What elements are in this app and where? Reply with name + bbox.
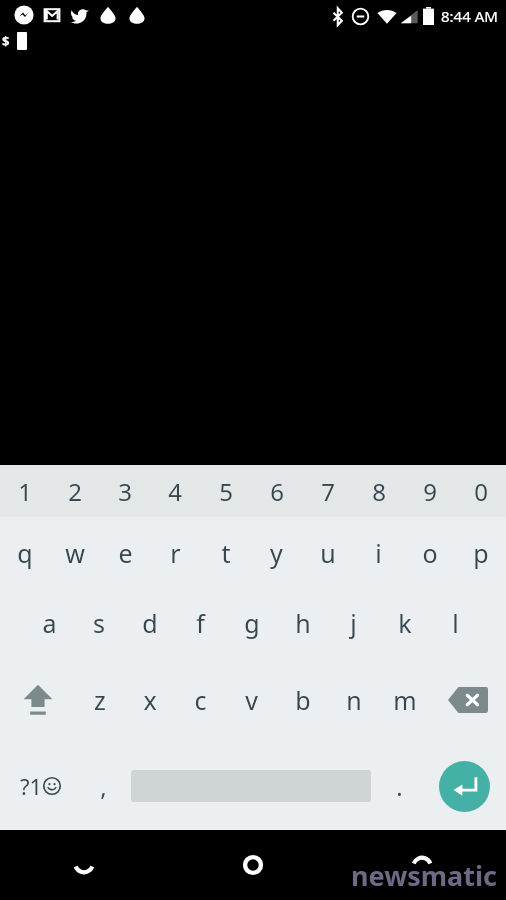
staticText: e <box>118 536 133 570</box>
staticText: 5 <box>219 475 233 508</box>
button[interactable]: Home <box>168 830 337 900</box>
button[interactable]: . <box>376 742 422 830</box>
button[interactable]: n <box>328 657 379 742</box>
button[interactable]: t <box>200 517 251 589</box>
button[interactable]: c <box>175 657 226 742</box>
staticText: w <box>65 536 85 570</box>
button[interactable]: Enter <box>422 742 506 830</box>
staticText: s <box>93 606 105 640</box>
staticText: $ <box>2 32 10 50</box>
staticText: o <box>422 536 438 570</box>
button[interactable]: u <box>302 517 353 589</box>
staticText: ?1 <box>20 771 43 801</box>
button[interactable]: 7 <box>302 465 353 517</box>
button[interactable]: 0 <box>455 465 506 517</box>
button[interactable]: , <box>80 742 126 830</box>
button[interactable]: o <box>404 517 455 589</box>
staticText: 3 <box>118 475 132 508</box>
button[interactable]: w <box>50 517 100 589</box>
button[interactable]: g <box>226 589 277 657</box>
button[interactable]: j <box>328 589 379 657</box>
staticText: r <box>170 536 181 570</box>
staticText: a <box>42 606 57 640</box>
staticText: x <box>143 683 157 717</box>
staticText: z <box>94 683 106 717</box>
button[interactable]: m <box>379 657 430 742</box>
button[interactable]: 3 <box>100 465 150 517</box>
staticText: c <box>194 683 207 717</box>
button[interactable]: Shift <box>0 657 75 742</box>
button[interactable]: i <box>353 517 404 589</box>
button[interactable]: 6 <box>251 465 302 517</box>
staticText: i <box>375 536 382 570</box>
staticText: n <box>346 683 362 717</box>
staticText: q <box>17 536 33 570</box>
staticText: , <box>100 770 107 803</box>
button[interactable]: y <box>251 517 302 589</box>
staticText: g <box>244 606 260 640</box>
button[interactable]: l <box>430 589 481 657</box>
staticText: p <box>473 536 489 570</box>
staticText: 0 <box>474 475 488 508</box>
button[interactable]: e <box>100 517 150 589</box>
staticText: k <box>398 606 412 640</box>
staticText: 7 <box>321 475 335 508</box>
staticText: 9 <box>423 475 437 508</box>
staticText: 2 <box>68 475 82 508</box>
button[interactable]: 4 <box>150 465 200 517</box>
button[interactable]: Recents <box>337 830 506 900</box>
staticText: 1 <box>18 475 32 508</box>
staticText: 6 <box>270 475 284 508</box>
staticText: d <box>142 606 158 640</box>
staticText: y <box>270 536 283 570</box>
button[interactable]: 9 <box>404 465 455 517</box>
button[interactable]: a <box>24 589 74 657</box>
button[interactable]: 8 <box>353 465 404 517</box>
button[interactable]: h <box>277 589 328 657</box>
button[interactable]: f <box>175 589 226 657</box>
button[interactable]: s <box>74 589 124 657</box>
button[interactable]: p <box>455 517 506 589</box>
staticText: v <box>245 683 258 717</box>
button[interactable]: Space <box>126 742 376 830</box>
button[interactable]: Delete <box>430 657 506 742</box>
button[interactable]: x <box>125 657 175 742</box>
staticText: u <box>320 536 336 570</box>
staticText: 8 <box>372 475 386 508</box>
staticText: f <box>196 606 205 640</box>
button[interactable]: 1 <box>0 465 50 517</box>
staticText: m <box>393 683 417 717</box>
staticText: newsmatic <box>351 857 498 894</box>
staticText: j <box>350 606 357 640</box>
button[interactable]: q <box>0 517 50 589</box>
button[interactable]: r <box>150 517 200 589</box>
staticText: b <box>295 683 311 717</box>
button[interactable]: z <box>75 657 125 742</box>
staticText: l <box>452 606 459 640</box>
staticText: h <box>295 606 311 640</box>
button[interactable]: b <box>277 657 328 742</box>
staticText: 8:44 AM <box>441 6 498 26</box>
button[interactable]: 5 <box>200 465 251 517</box>
button[interactable]: ?1 <box>0 742 80 830</box>
button[interactable]: k <box>379 589 430 657</box>
button[interactable]: d <box>124 589 175 657</box>
button[interactable]: 2 <box>50 465 100 517</box>
staticText: . <box>396 770 403 803</box>
staticText: t <box>221 536 231 570</box>
button[interactable]: Back <box>0 830 168 900</box>
staticText: 4 <box>168 475 182 508</box>
button[interactable]: v <box>226 657 277 742</box>
